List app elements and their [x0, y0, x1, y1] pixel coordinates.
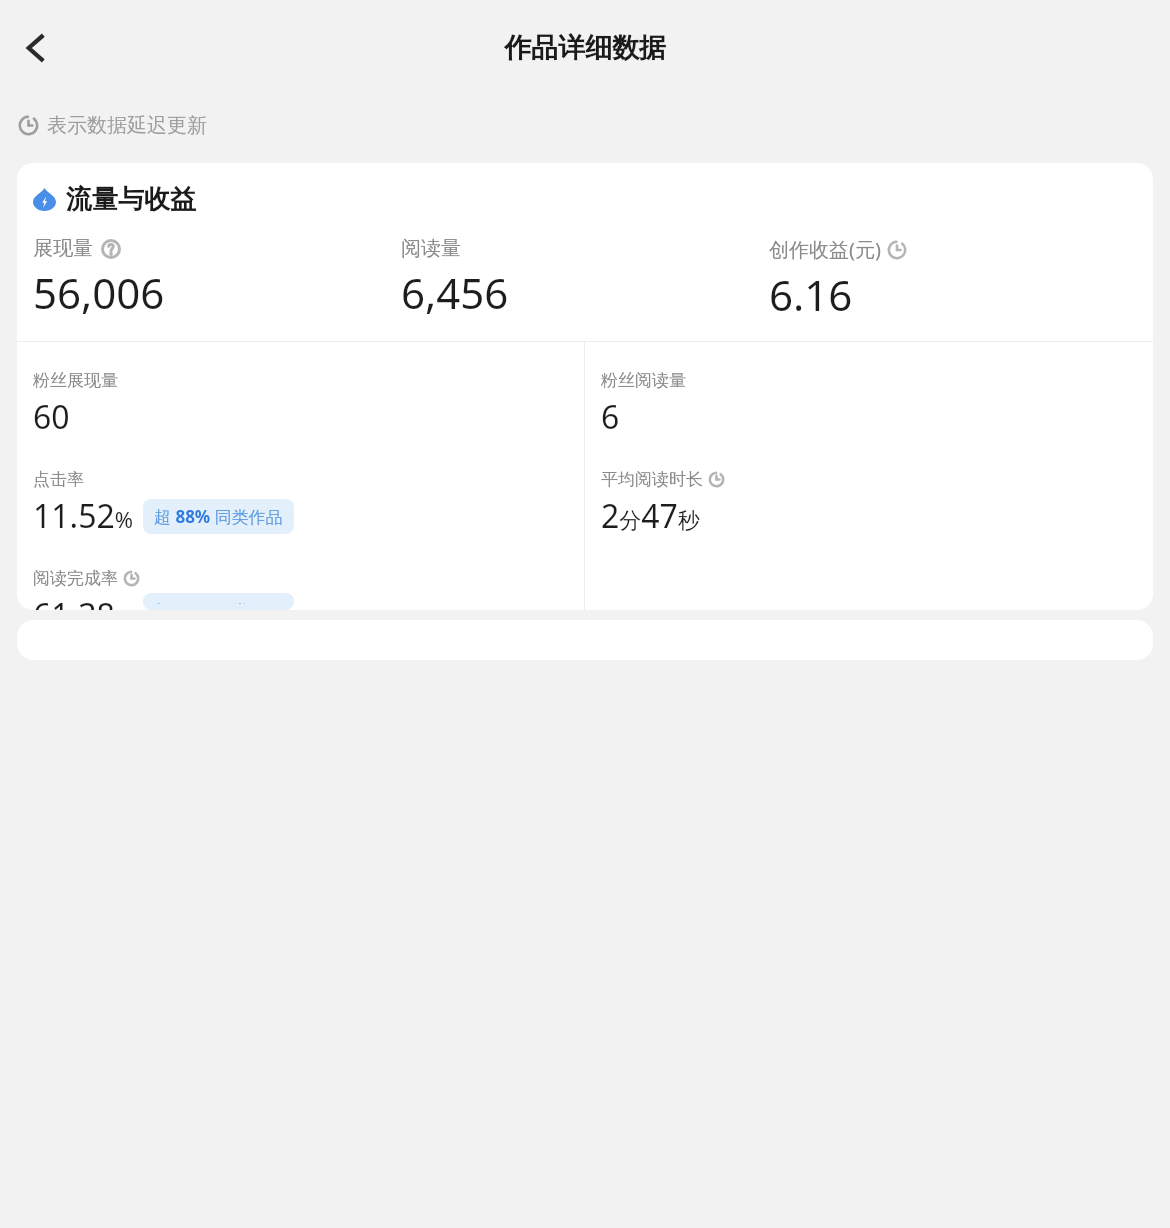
staticText: 超 24% 同类作品 [154, 599, 283, 604]
button[interactable]: 超 88% 同类作品 [143, 499, 294, 534]
staticText: 点击率 [33, 469, 84, 490]
staticText: 56,006 [33, 264, 165, 321]
staticText: 6 [601, 395, 620, 439]
staticText: 61.38% [33, 593, 134, 610]
staticText: 平均阅读时长 [601, 469, 703, 490]
button[interactable]: 超 24% 同类作品 [143, 593, 294, 610]
staticText: 粉丝阅读量 [601, 370, 686, 391]
staticText: 超 88% 同类作品 [154, 505, 283, 528]
staticText: 6.16 [769, 266, 853, 323]
button[interactable]: Back [8, 20, 64, 76]
staticText: 作品详细数据 [504, 31, 666, 65]
staticText: 11.52% [33, 494, 134, 538]
staticText: 2分47秒 [601, 494, 700, 538]
staticText: 流量与收益 [66, 183, 196, 216]
staticText: 阅读量 [401, 236, 461, 261]
staticText: 6,456 [401, 264, 509, 321]
staticText: 粉丝展现量 [33, 370, 118, 391]
staticText: 阅读完成率 [33, 568, 118, 589]
staticText: 创作收益(元) [769, 236, 881, 263]
staticText: 60 [33, 395, 70, 439]
staticText: 展现量 [33, 236, 93, 261]
staticText: 表示数据延迟更新 [47, 113, 207, 138]
